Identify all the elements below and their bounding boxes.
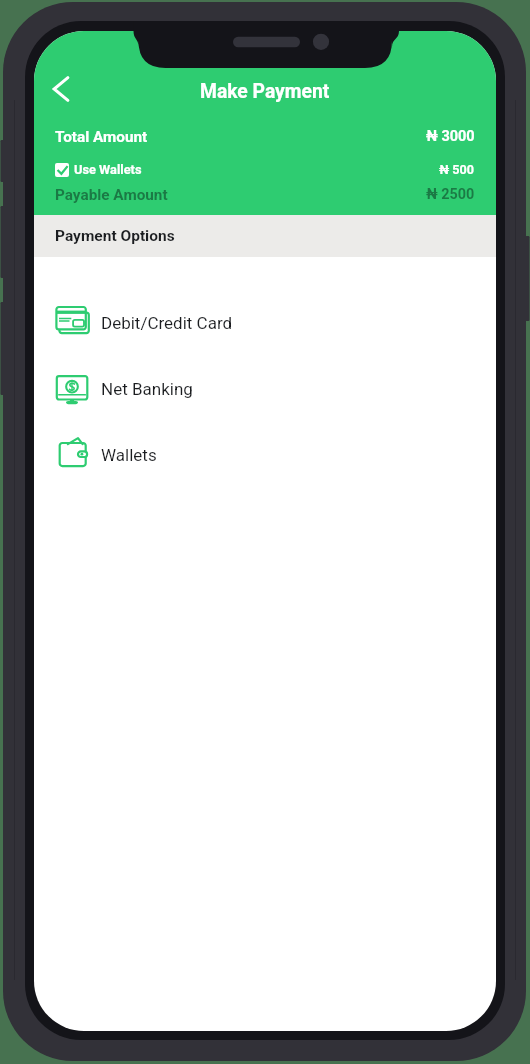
button[interactable]: Back: [39, 67, 83, 111]
staticText: Wallets: [101, 445, 157, 465]
staticText: Payment Options: [55, 227, 175, 245]
button[interactable]: Debit/Credit Card: [34, 290, 496, 356]
staticText: ₦ 2500: [426, 186, 475, 203]
staticText: Payable Amount: [55, 186, 168, 204]
staticText: ₦ 3000: [426, 128, 475, 145]
button[interactable]: Use Wallets: [55, 162, 142, 177]
staticText: Net Banking: [101, 379, 193, 399]
staticText: Make Payment: [200, 80, 330, 103]
staticText: Debit/Credit Card: [101, 313, 233, 333]
staticText: Use Wallets: [74, 162, 142, 177]
staticText: Total Amount: [55, 128, 148, 146]
staticText: ₦ 500: [439, 162, 475, 177]
button[interactable]: Net Banking: [34, 356, 496, 422]
button[interactable]: Wallets: [34, 422, 496, 488]
